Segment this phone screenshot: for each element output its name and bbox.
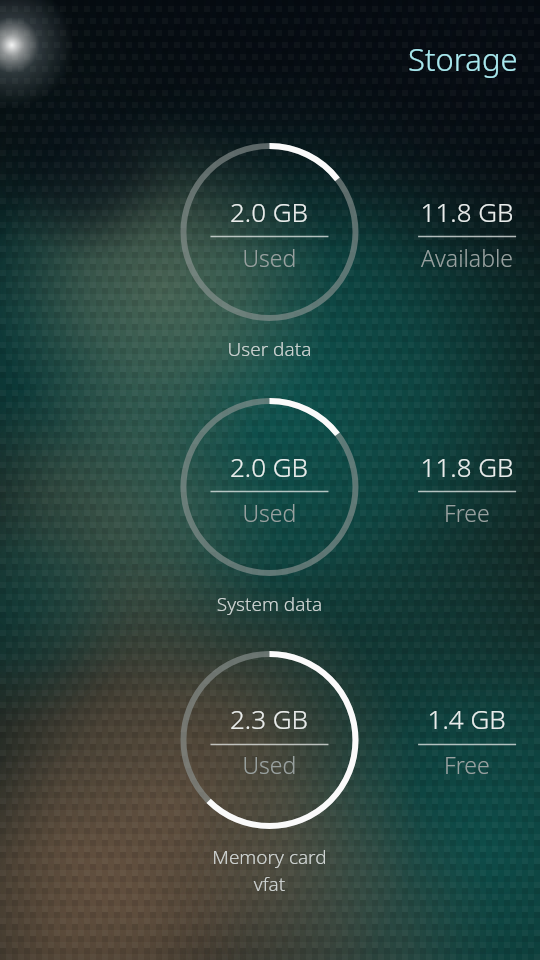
button[interactable]: System data storage: [0, 391, 540, 625]
button[interactable]: Memory card storage: [0, 644, 540, 902]
button[interactable]: User data storage: [0, 136, 540, 370]
